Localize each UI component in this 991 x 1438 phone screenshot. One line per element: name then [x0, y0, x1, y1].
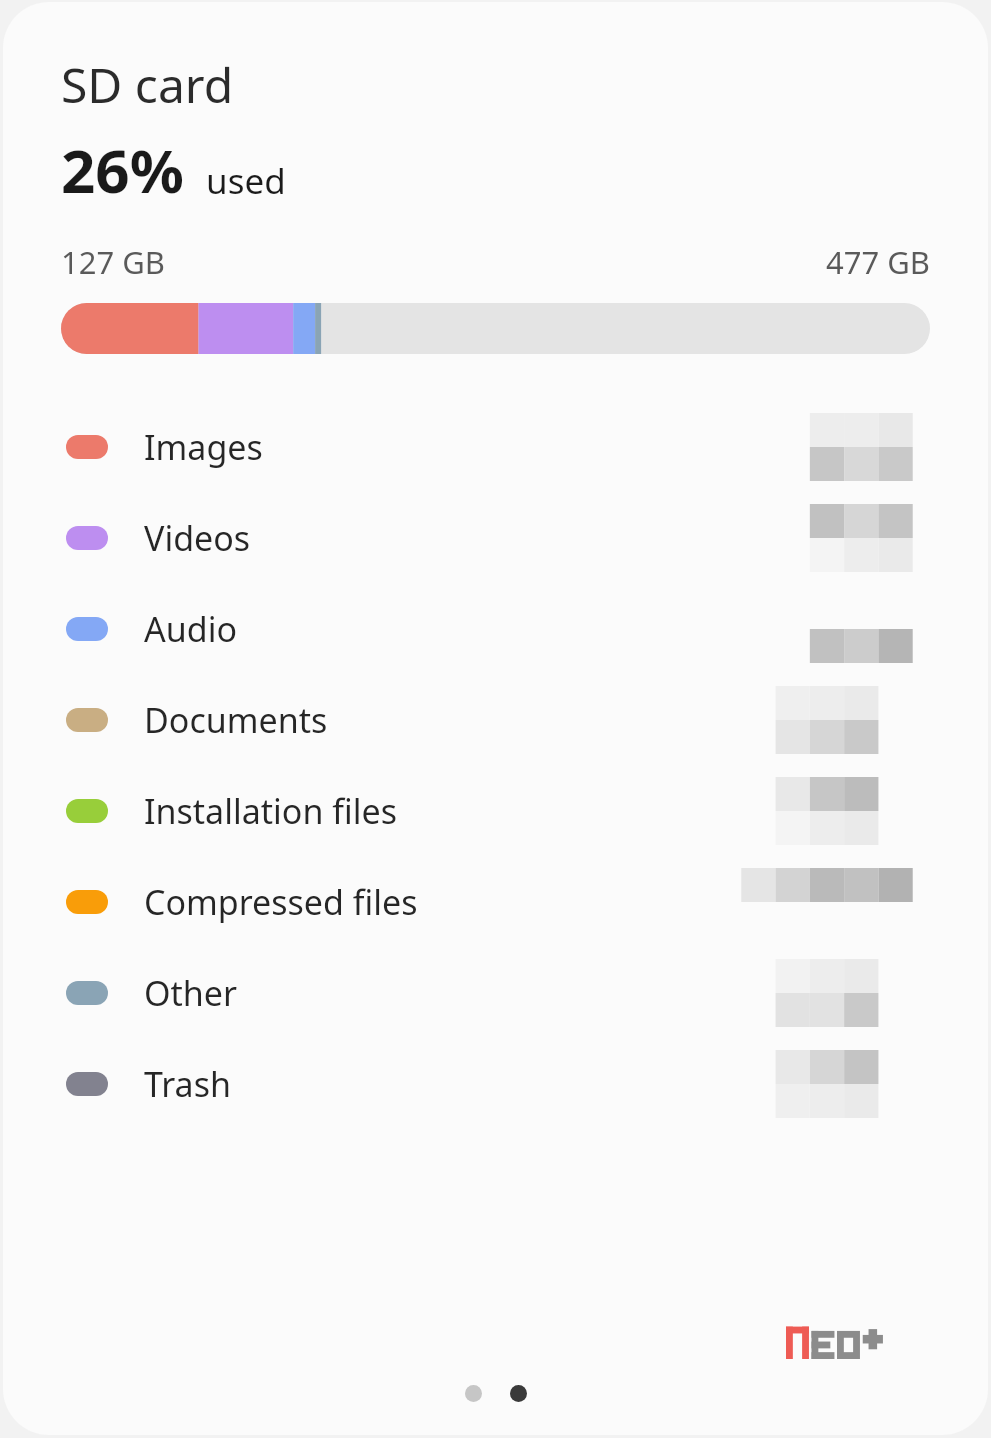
staticText: Installation files	[144, 788, 397, 834]
staticText: 26%	[61, 129, 184, 211]
button[interactable]: Compressed files	[3, 856, 988, 947]
button[interactable]: Images	[3, 401, 988, 492]
staticText: Audio	[144, 606, 237, 652]
staticText: Documents	[144, 697, 328, 743]
staticText: Other	[144, 970, 238, 1016]
button[interactable]: Trash	[3, 1038, 988, 1129]
staticText: SD card	[61, 52, 234, 117]
staticText: Compressed files	[144, 879, 418, 925]
button[interactable]: Page 2	[510, 1385, 527, 1402]
staticText: Images	[144, 424, 263, 470]
button[interactable]: Page 1	[465, 1385, 482, 1402]
other: neo plus logo	[786, 1323, 888, 1359]
staticText: used	[206, 157, 286, 205]
button[interactable]: Other	[3, 947, 988, 1038]
staticText: 477 GB	[826, 241, 930, 283]
staticText: Trash	[144, 1061, 231, 1107]
button[interactable]: Installation files	[3, 765, 988, 856]
staticText: Videos	[144, 515, 251, 561]
button[interactable]: Audio	[3, 583, 988, 674]
button[interactable]: Storage usage breakdown	[61, 303, 930, 354]
button[interactable]: Documents	[3, 674, 988, 765]
button[interactable]: Videos	[3, 492, 988, 583]
staticText: 127 GB	[61, 241, 165, 283]
